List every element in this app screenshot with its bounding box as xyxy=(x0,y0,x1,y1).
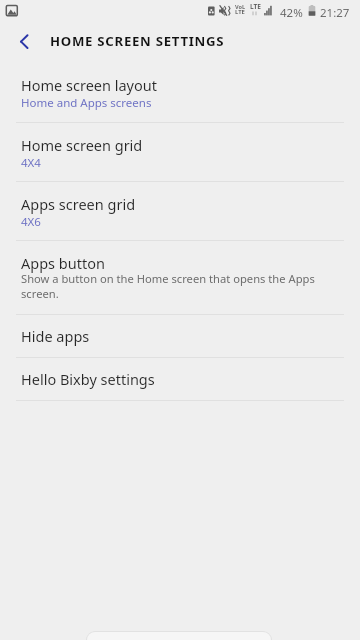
staticText: 21:27 xyxy=(320,5,350,21)
staticText: Home screen layout xyxy=(21,75,157,95)
staticText: LTE xyxy=(250,2,262,11)
button[interactable]: Home screen layout xyxy=(0,62,360,122)
button[interactable]: Hello Bixby settings xyxy=(0,357,360,400)
button[interactable]: Apps screen grid xyxy=(0,181,360,240)
button[interactable]: Navigate up xyxy=(4,22,44,62)
staticText: Home and Apps screens xyxy=(21,95,152,111)
staticText: HOME SCREEN SETTINGS xyxy=(50,32,225,50)
staticText: Hello Bixby settings xyxy=(21,369,155,389)
button[interactable]: Home screen grid xyxy=(0,122,360,181)
staticText: 4X6 xyxy=(21,214,41,230)
staticText: VoL xyxy=(235,3,246,11)
staticText: Apps screen grid xyxy=(21,194,136,214)
staticText: Apps button xyxy=(21,253,105,273)
staticText: 4X4 xyxy=(21,155,41,171)
staticText: 42% xyxy=(280,5,303,21)
staticText: Show a button on the Home screen that op… xyxy=(21,271,317,301)
button[interactable]: Hide apps xyxy=(0,314,360,357)
staticText: Hide apps xyxy=(21,326,90,346)
staticText: LTE xyxy=(235,8,245,16)
button[interactable]: Apps button xyxy=(0,240,360,314)
staticText: Home screen grid xyxy=(21,135,143,155)
